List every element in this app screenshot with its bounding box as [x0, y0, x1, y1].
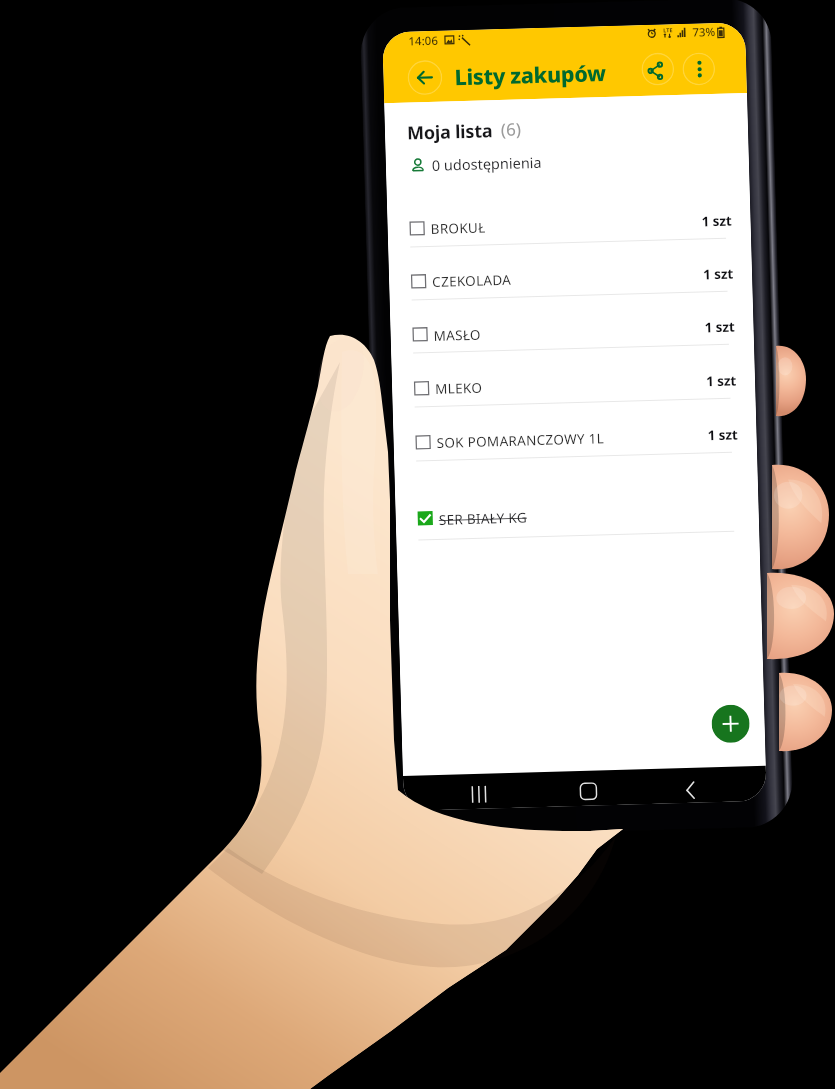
staticText: MASŁO [433, 326, 482, 345]
staticText: SER BIAŁY KG [439, 508, 528, 529]
staticText: 73% [692, 24, 715, 41]
staticText: 1 szt [704, 317, 736, 336]
staticText: BROKUŁ [430, 218, 486, 238]
button[interactable]: Wstecz [407, 60, 443, 96]
staticText: 0 udostępnienia [432, 152, 542, 175]
button[interactable]: Ekran główny [570, 775, 607, 806]
staticText: Moja lista [407, 118, 493, 146]
staticText: 14:06 [408, 33, 439, 49]
button[interactable] [410, 367, 741, 403]
button[interactable]: Dodaj [711, 704, 750, 743]
button[interactable] [411, 421, 743, 457]
button[interactable] [407, 260, 738, 296]
staticText: MLEKO [435, 379, 482, 398]
button[interactable] [413, 498, 745, 533]
staticText: LTE [663, 26, 673, 33]
staticText: 1 szt [707, 425, 739, 444]
button[interactable] [405, 207, 737, 243]
staticText: 1 szt [703, 264, 734, 283]
staticText: SOK POMARANCZOWY 1L [436, 429, 605, 452]
button[interactable]: Więcej opcji [682, 52, 716, 86]
button[interactable]: Ostatnie aplikacje [463, 778, 500, 809]
staticText: CZEKOLADA [432, 271, 512, 291]
staticText: (6) [501, 117, 521, 141]
button[interactable]: Udostępnij [641, 52, 675, 86]
button[interactable]: Wstecz [675, 774, 708, 803]
button[interactable] [408, 314, 740, 350]
staticText: 1 szt [706, 371, 737, 390]
staticText: 1 szt [701, 212, 733, 230]
staticText: Listy zakupów [454, 58, 607, 91]
